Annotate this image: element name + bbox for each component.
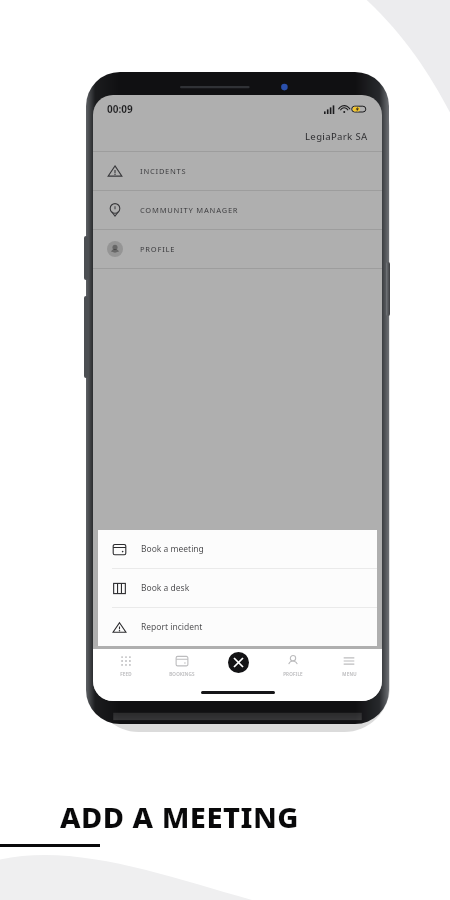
staticText: PROFILE — [140, 244, 176, 254]
button[interactable]: MENU — [326, 649, 372, 677]
button[interactable]: INCIDENTS — [93, 152, 382, 190]
button[interactable]: COMMUNITY MANAGER — [93, 191, 382, 229]
staticText: Report incident — [141, 621, 203, 633]
staticText: LegiaPark SA — [305, 130, 368, 143]
staticText: Book a desk — [141, 582, 190, 594]
button[interactable]: BOOKINGS — [159, 649, 205, 677]
staticText: 00:09 — [107, 102, 133, 116]
button[interactable]: Close menu — [228, 652, 249, 673]
staticText: ADD A MEETING — [60, 797, 299, 836]
staticText: PROFILE — [283, 671, 303, 677]
button[interactable]: PROFILE — [270, 649, 316, 677]
button[interactable]: FEED — [103, 649, 149, 677]
staticText: MENU — [342, 671, 357, 677]
staticText: BOOKINGS — [169, 671, 195, 677]
staticText: FEED — [120, 671, 132, 677]
button[interactable]: Report incident — [98, 608, 377, 646]
staticText: INCIDENTS — [140, 166, 187, 176]
staticText: COMMUNITY MANAGER — [140, 205, 239, 215]
button[interactable]: Book a meeting — [98, 530, 377, 568]
button[interactable]: PROFILE — [93, 230, 382, 268]
button[interactable]: Book a desk — [98, 569, 377, 607]
staticText: Book a meeting — [141, 543, 204, 555]
